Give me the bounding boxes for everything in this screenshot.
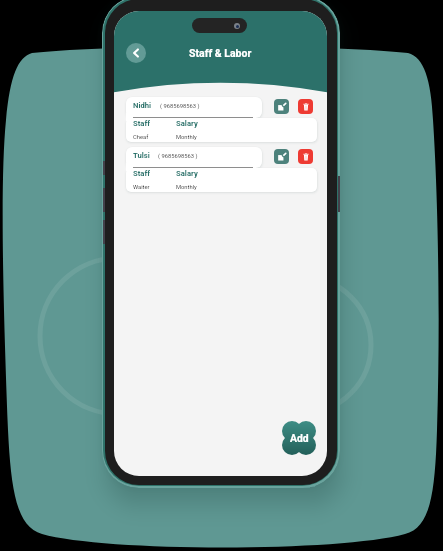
staticText: Monthly [176,134,197,141]
button[interactable]: Add [282,421,316,455]
staticText: Staff [133,169,150,178]
staticText: Monthly [176,184,197,191]
button[interactable]: Back [126,43,146,63]
button[interactable]: Delete [298,149,313,164]
button[interactable]: Delete [298,99,313,114]
staticText: Tulsi [133,151,150,160]
staticText: Add [290,432,309,444]
staticText: ( 9685698563 ) [160,103,200,110]
button[interactable]: Edit [274,149,289,164]
staticText: ( 9685698563 ) [158,153,198,160]
staticText: Staff & Labor [189,47,252,59]
staticText: Staff [133,119,150,128]
staticText: Waiter [133,184,150,191]
staticText: Nidhi [133,101,152,110]
staticText: Cheaf [133,134,149,141]
button[interactable]: Edit [274,99,289,114]
staticText: Salary [176,169,198,178]
staticText: Salary [176,119,198,128]
